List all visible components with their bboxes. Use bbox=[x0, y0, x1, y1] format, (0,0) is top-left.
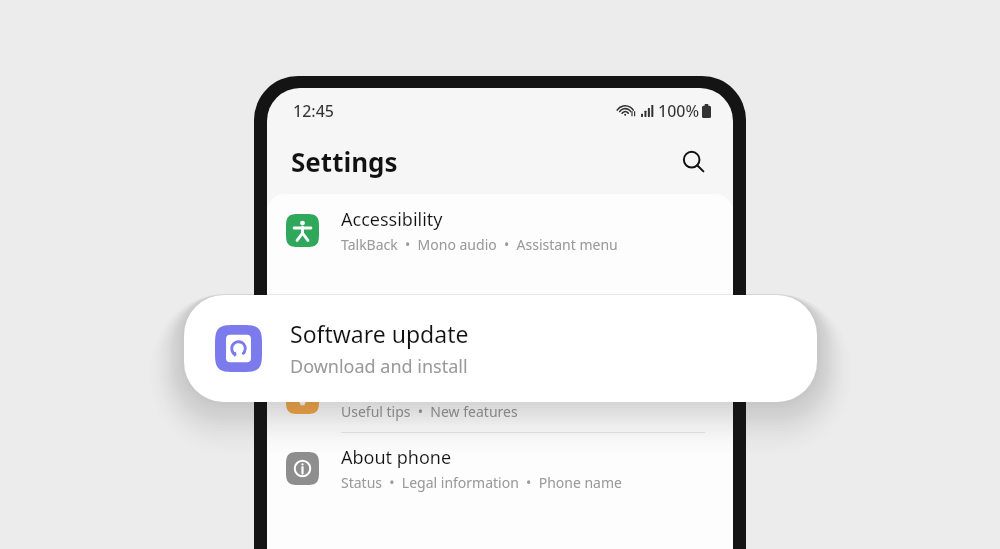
staticText: About phone bbox=[341, 445, 452, 470]
button[interactable]: About phone bbox=[267, 433, 733, 503]
staticText: Download and install bbox=[290, 354, 468, 379]
staticText: Status • Legal information • Phone name bbox=[341, 473, 622, 492]
staticText: Useful tips • New features bbox=[341, 402, 518, 421]
staticText: Software update bbox=[290, 318, 469, 349]
staticText: 12:45 bbox=[293, 100, 334, 122]
staticText: 100% bbox=[658, 100, 700, 122]
button[interactable]: Tips and user manual bbox=[267, 362, 733, 432]
staticText: Settings bbox=[291, 144, 398, 179]
button[interactable]: Software update bbox=[184, 295, 817, 402]
staticText: Accessibility bbox=[341, 207, 443, 232]
button[interactable]: Search bbox=[675, 143, 711, 179]
button[interactable]: Accessibility bbox=[267, 194, 733, 266]
staticText: TalkBack • Mono audio • Assistant menu bbox=[341, 235, 618, 254]
